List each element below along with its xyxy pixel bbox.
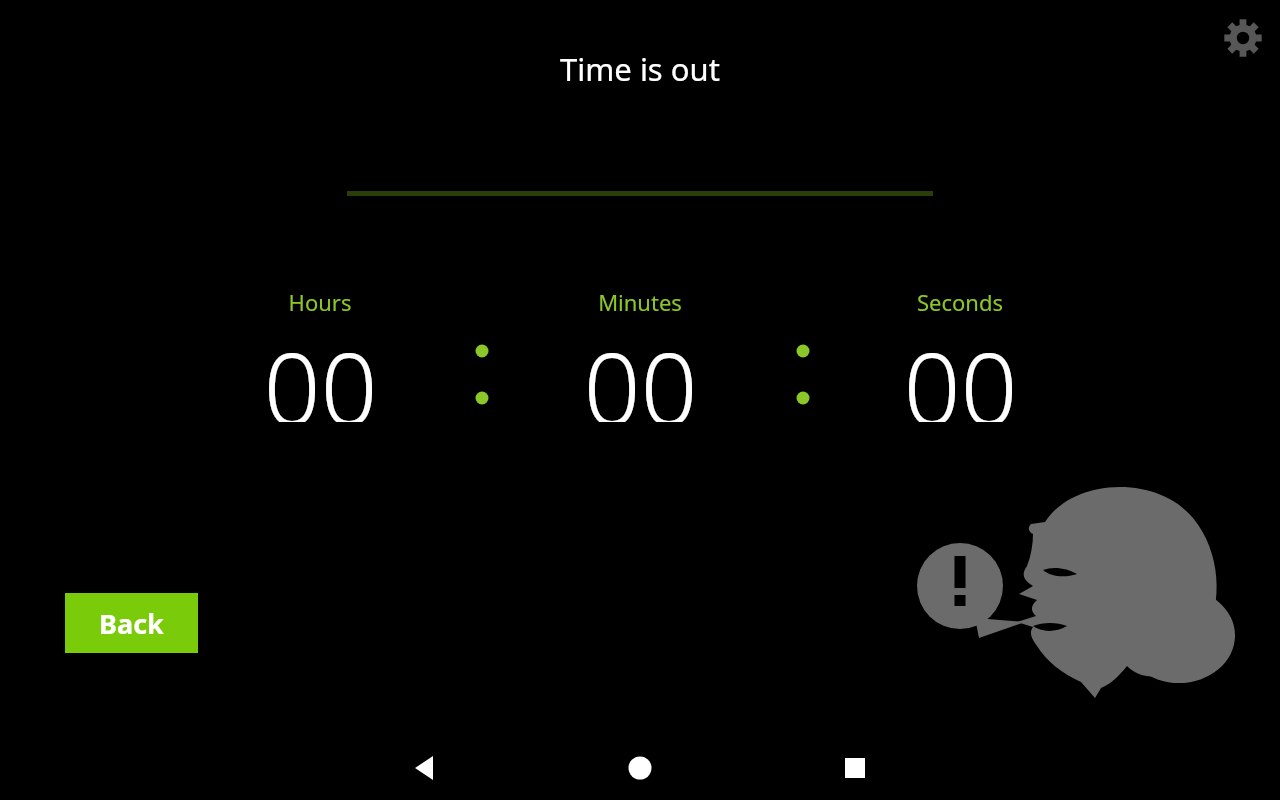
button[interactable]: 00: [830, 318, 1090, 422]
staticText: Minutes: [520, 287, 760, 317]
staticText: Hours: [200, 287, 440, 317]
staticText: 00: [903, 318, 1018, 422]
button[interactable]: Back: [394, 738, 454, 798]
button[interactable]: Settings: [1215, 10, 1271, 66]
staticText: Seconds: [840, 287, 1080, 317]
button[interactable]: Back: [65, 593, 198, 653]
button[interactable]: Home: [610, 738, 670, 798]
staticText: 00: [263, 318, 378, 422]
button[interactable]: 00: [190, 318, 450, 422]
staticText: 00: [583, 318, 698, 422]
staticText: Back: [99, 605, 164, 642]
staticText: Time is out: [340, 48, 940, 92]
button[interactable]: Recent apps: [825, 738, 885, 798]
button[interactable]: 00: [510, 318, 770, 422]
